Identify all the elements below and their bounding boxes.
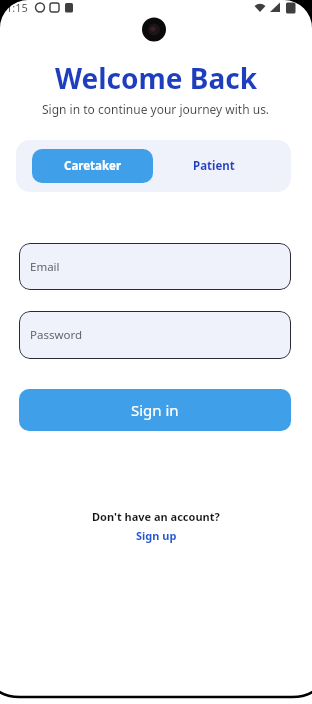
staticText: Sign in to continue your journey with us…	[42, 101, 270, 117]
button[interactable]: Patient	[153, 149, 275, 183]
button[interactable]: Sign in	[19, 389, 291, 431]
staticText: Password	[30, 327, 83, 343]
staticText: Sign in	[131, 400, 179, 420]
staticText: Caretaker	[64, 158, 122, 174]
staticText: Email	[30, 259, 60, 275]
staticText: Welcome Back	[55, 59, 258, 97]
button[interactable]: Password	[19, 311, 291, 359]
staticText: 1:15	[6, 0, 28, 15]
staticText: Don't have an account?	[92, 509, 220, 524]
staticText: Patient	[193, 158, 235, 174]
button[interactable]: Email	[19, 243, 291, 290]
button[interactable]: Caretaker	[32, 149, 153, 183]
button[interactable]: Sign up	[136, 528, 177, 543]
